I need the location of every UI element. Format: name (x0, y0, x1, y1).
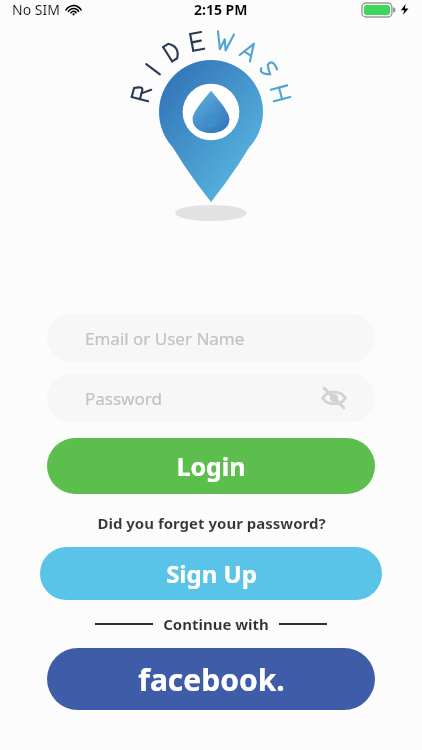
button[interactable]: Did you forget your password? (91, 511, 332, 535)
staticText: 2:15 PM (194, 0, 248, 19)
staticText: Password (85, 387, 162, 410)
button[interactable]: Show password (319, 383, 349, 413)
button[interactable]: facebook. (47, 648, 375, 710)
staticText: Sign Up (166, 557, 257, 590)
staticText: Email or User Name (85, 327, 245, 350)
staticText: Login (176, 449, 246, 483)
staticText: facebook. (138, 659, 285, 700)
staticText: Continue with (163, 614, 269, 634)
button[interactable]: Sign Up (40, 547, 382, 600)
button[interactable]: Login (47, 438, 375, 494)
button[interactable]: Password (47, 374, 375, 422)
staticText: No SIM (12, 0, 60, 19)
button[interactable]: Email or User Name (47, 314, 375, 362)
staticText: Did you forget your password? (97, 513, 326, 533)
